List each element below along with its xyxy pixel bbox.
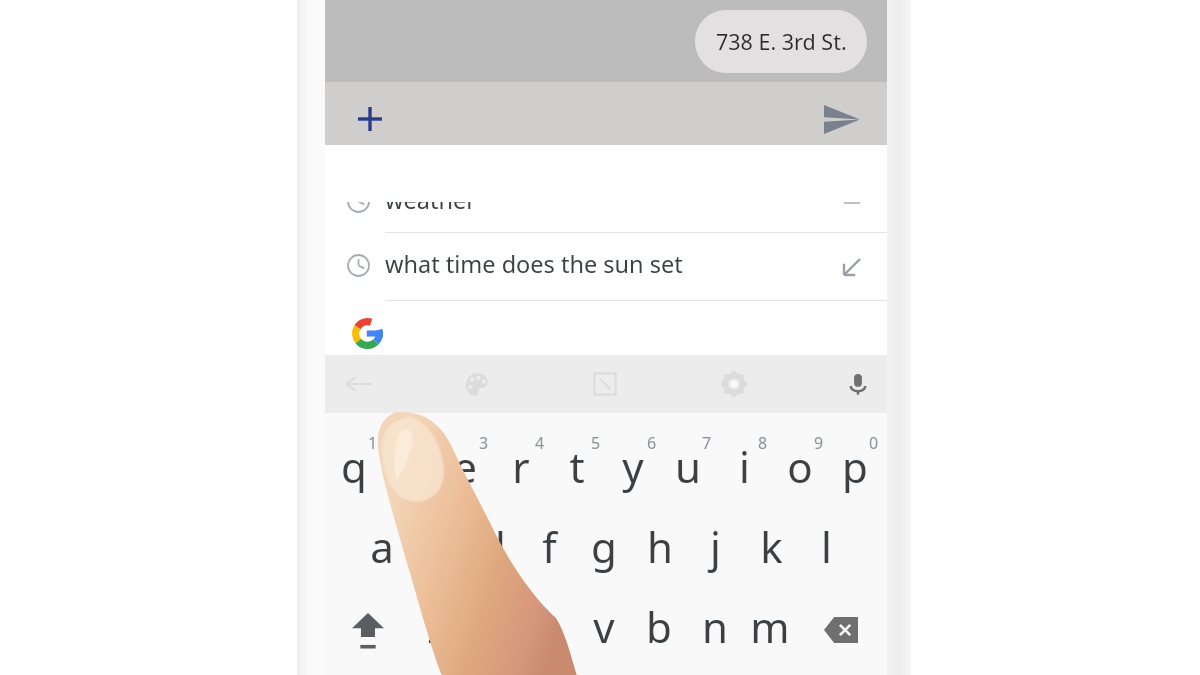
staticText: i [739, 438, 750, 495]
staticText: q [341, 438, 367, 495]
staticText: b [646, 598, 672, 655]
staticText: t [569, 438, 585, 495]
staticText: weather [385, 184, 476, 216]
staticText: m [750, 598, 790, 655]
staticText: 0 [869, 432, 879, 454]
button[interactable]: e [439, 436, 491, 496]
button[interactable]: m [744, 596, 796, 656]
button[interactable]: Stickers [581, 360, 629, 408]
button[interactable]: k [745, 516, 797, 576]
staticText: u [675, 438, 701, 495]
button[interactable]: weather [325, 169, 887, 237]
button[interactable]: Backspace [816, 605, 866, 655]
staticText: k [760, 518, 783, 575]
button[interactable]: z [411, 596, 463, 656]
staticText: g [591, 518, 617, 575]
button[interactable]: l [800, 516, 852, 576]
button[interactable]: Send [819, 96, 865, 142]
button[interactable]: c [522, 596, 574, 656]
staticText: w [393, 438, 427, 495]
button[interactable]: j [689, 516, 741, 576]
staticText: o [787, 438, 813, 495]
button[interactable]: b [633, 596, 685, 656]
staticText: r [512, 438, 530, 495]
staticText: e [453, 438, 477, 495]
button[interactable]: Shift [343, 607, 393, 657]
staticText: 738 E. 3rd St. [716, 27, 847, 56]
button[interactable]: x [467, 596, 519, 656]
button[interactable]: what time does the sun set [325, 233, 887, 301]
staticText: 9 [814, 432, 824, 454]
button[interactable]: Voice input [834, 360, 882, 408]
staticText: n [702, 598, 728, 655]
button[interactable]: s [412, 516, 464, 576]
button[interactable]: r [495, 436, 547, 496]
button[interactable]: o [774, 436, 826, 496]
button[interactable]: v [578, 596, 630, 656]
button[interactable]: y [607, 436, 659, 496]
staticText: 4 [535, 432, 545, 454]
staticText: v [593, 598, 615, 655]
staticText: f [542, 518, 557, 575]
staticText: p [842, 438, 868, 495]
button[interactable]: Settings [710, 360, 758, 408]
button[interactable]: Google search [325, 301, 887, 355]
staticText: d [480, 518, 506, 575]
staticText: 6 [647, 432, 657, 454]
button[interactable]: 738 E. 3rd St. [695, 10, 867, 73]
staticText: 1 [368, 432, 378, 454]
staticText: s [428, 518, 449, 575]
staticText: j [710, 518, 721, 575]
staticText: y [622, 438, 644, 495]
button[interactable]: n [689, 596, 741, 656]
staticText: 7 [702, 432, 712, 454]
button[interactable]: Theme [453, 360, 501, 408]
staticText: l [821, 518, 832, 575]
button[interactable]: Add attachment [347, 96, 393, 142]
button[interactable]: p [829, 436, 881, 496]
button[interactable]: t [551, 436, 603, 496]
button[interactable]: d [467, 516, 519, 576]
staticText: 8 [758, 432, 768, 454]
button[interactable]: f [523, 516, 575, 576]
staticText: c [538, 598, 559, 655]
staticText: what time does the sun set [385, 248, 683, 280]
staticText: 3 [479, 432, 489, 454]
staticText: a [370, 518, 394, 575]
button[interactable]: g [578, 516, 630, 576]
staticText: 2 [424, 432, 434, 454]
staticText: h [647, 518, 673, 575]
button[interactable]: i [718, 436, 770, 496]
staticText: 5 [591, 432, 601, 454]
button[interactable]: u [662, 436, 714, 496]
button[interactable]: h [634, 516, 686, 576]
button[interactable]: w [384, 436, 436, 496]
button[interactable]: q [328, 436, 380, 496]
button[interactable]: a [356, 516, 408, 576]
staticText: z [427, 598, 447, 655]
